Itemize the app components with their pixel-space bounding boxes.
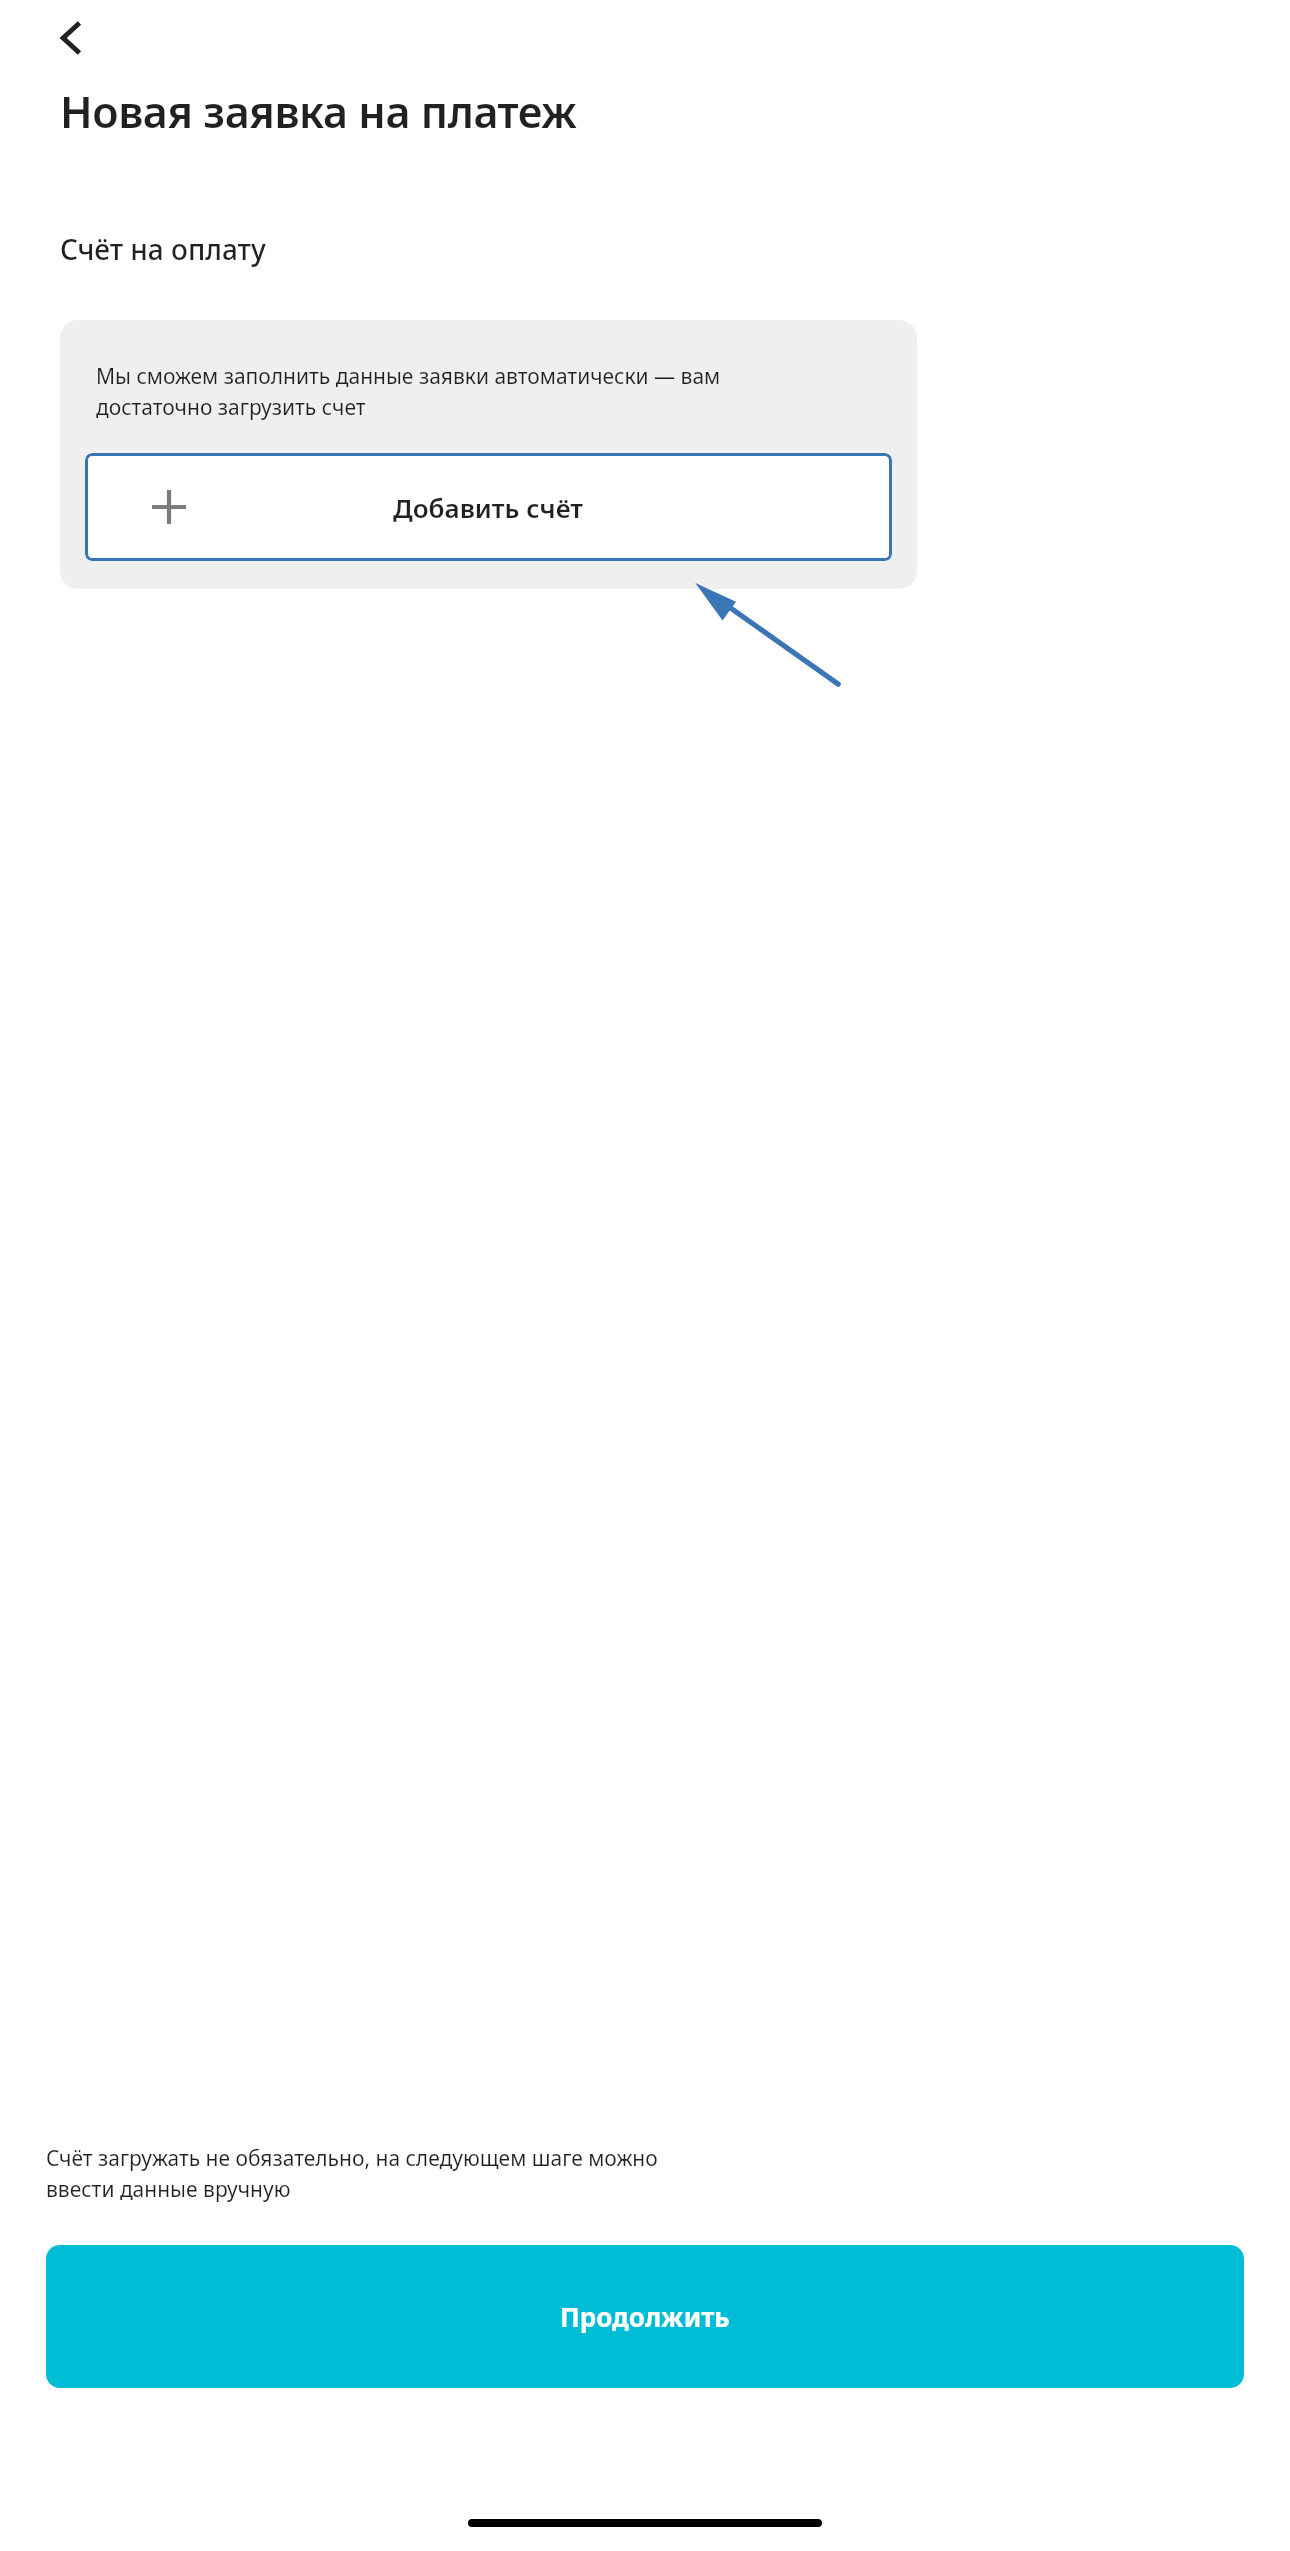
button[interactable]: Добавить счёт [85, 453, 892, 561]
button[interactable]: Продолжить [46, 2245, 1244, 2388]
staticText: Новая заявка на платеж [60, 82, 577, 141]
staticText: Счёт загружать не обязательно, на следую… [46, 2144, 658, 2203]
button[interactable]: Back [40, 6, 104, 70]
staticText: Добавить счёт [393, 490, 584, 525]
staticText: Счёт на оплату [60, 230, 266, 268]
staticText: Мы сможем заполнить данные заявки автома… [96, 362, 721, 421]
staticText: Продолжить [560, 2299, 730, 2334]
